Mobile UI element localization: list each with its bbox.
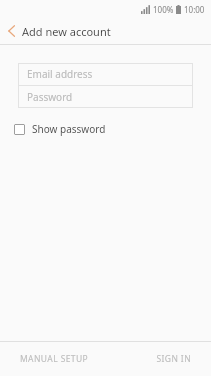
button[interactable]: MANUAL SETUP — [0, 342, 105, 376]
button[interactable]: Email address — [18, 63, 193, 85]
staticText: Password — [27, 90, 73, 104]
button[interactable]: SIGN IN — [105, 342, 211, 376]
staticText: Email address — [27, 67, 93, 81]
button[interactable]: Back — [0, 18, 22, 44]
staticText: MANUAL SETUP — [20, 353, 89, 365]
staticText: 10:00 — [184, 4, 205, 15]
button[interactable]: Show password — [14, 118, 106, 140]
staticText: Add new account — [22, 24, 111, 39]
staticText: Show password — [32, 122, 106, 136]
button[interactable]: Password — [18, 86, 193, 108]
staticText: SIGN IN — [156, 353, 191, 365]
staticText: 100% — [153, 4, 174, 15]
